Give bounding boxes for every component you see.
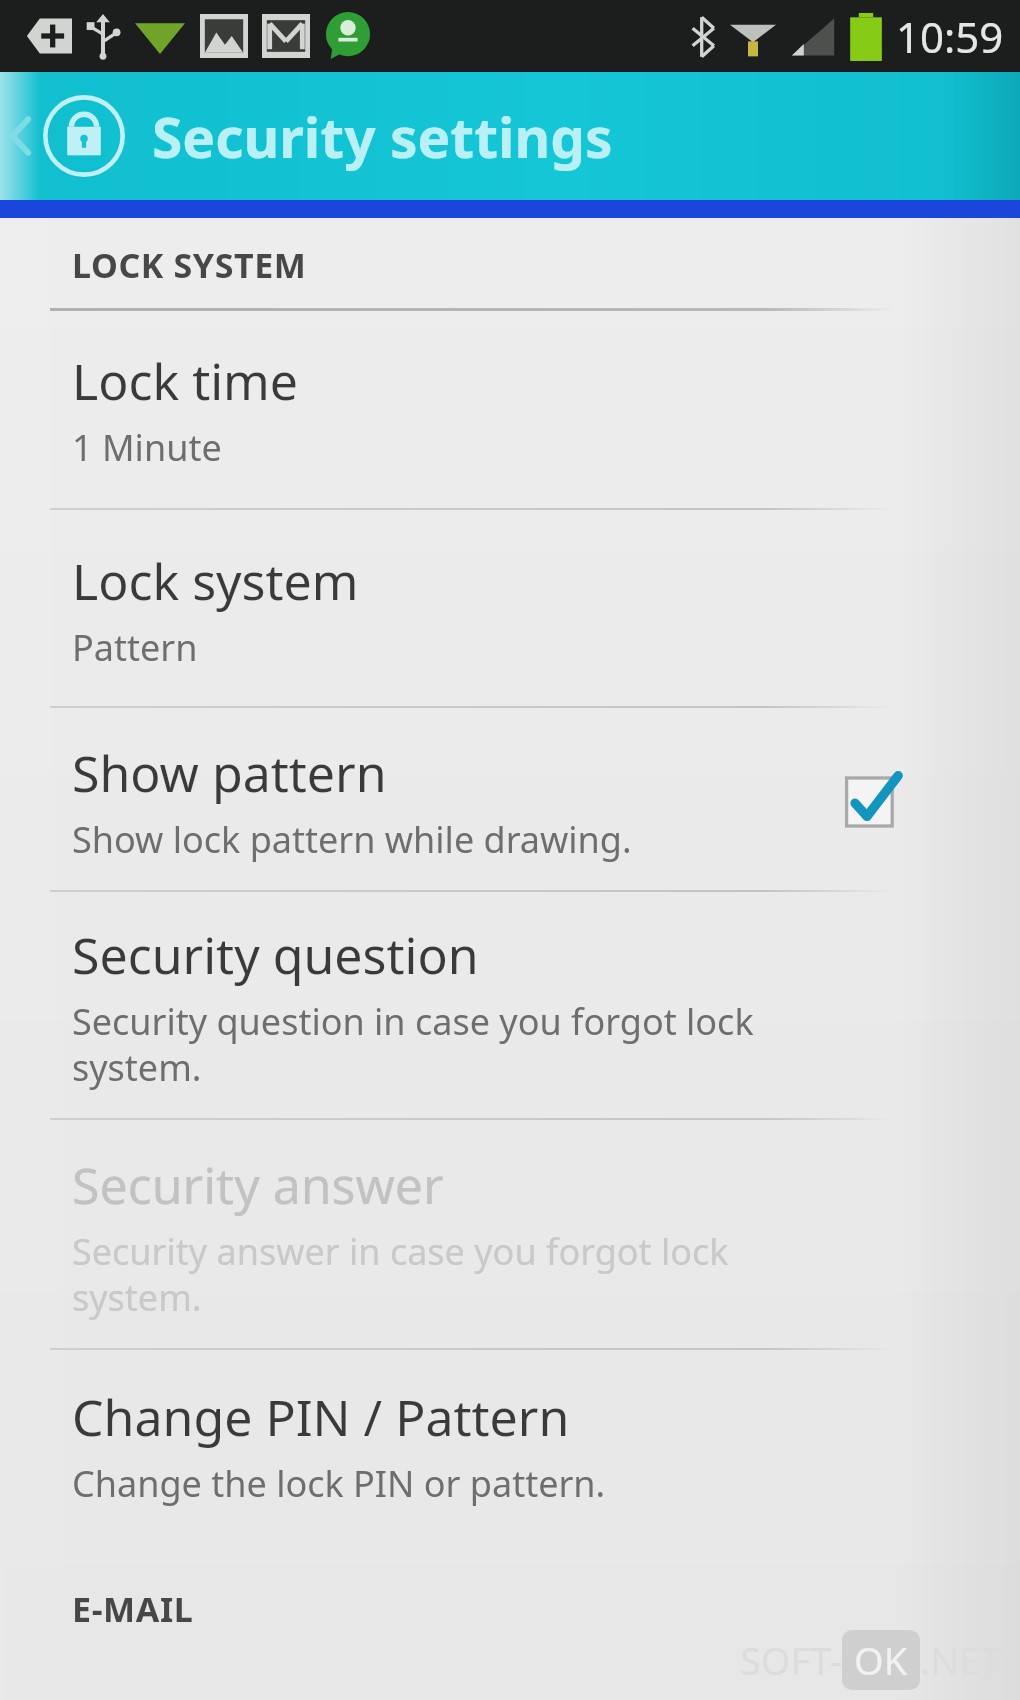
staticText: Change PIN / Pattern xyxy=(72,1383,570,1451)
staticText: OK xyxy=(854,1634,908,1686)
staticText: Lock system xyxy=(72,547,359,615)
button[interactable]: Lock time xyxy=(0,311,1020,508)
staticText: 1 Minute xyxy=(72,423,222,472)
staticText: Pattern xyxy=(72,623,198,672)
button[interactable]: Lock system xyxy=(0,511,1020,706)
staticText: 10:59 xyxy=(896,8,1004,65)
staticText: Show pattern xyxy=(72,739,387,807)
staticText: Security settings xyxy=(152,99,613,174)
staticText: Security question xyxy=(72,921,479,989)
staticText: E-MAIL xyxy=(72,1586,194,1632)
staticText: Security question in case you forgot loc… xyxy=(72,997,754,1092)
staticText: Change the lock PIN or pattern. xyxy=(72,1459,606,1508)
staticText: SOFT- xyxy=(739,1634,842,1686)
staticText: LOCK SYSTEM xyxy=(72,242,307,288)
button[interactable]: Show pattern, on xyxy=(836,765,910,839)
button[interactable]: Security question xyxy=(0,893,1020,1118)
button[interactable]: Back to settings xyxy=(0,72,1020,200)
button[interactable]: Change PIN / Pattern xyxy=(0,1351,1020,1542)
staticText: Show lock pattern while drawing. xyxy=(72,815,632,864)
button[interactable]: Show pattern xyxy=(0,709,1020,890)
staticText: Lock time xyxy=(72,347,299,415)
staticText: Security answer in case you forgot lock … xyxy=(72,1227,729,1322)
staticText: Security answer xyxy=(72,1151,444,1219)
